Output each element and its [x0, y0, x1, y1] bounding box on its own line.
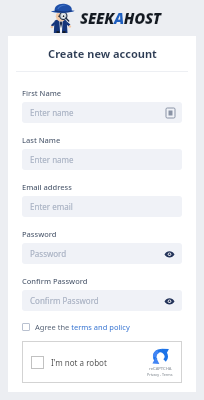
- staticText: Create new account: [48, 46, 157, 61]
- staticText: Enter name: [30, 154, 74, 165]
- button[interactable]: Enter name: [22, 149, 182, 170]
- button[interactable]: Agree the terms and policy: [22, 322, 182, 332]
- staticText: Password: [30, 248, 67, 259]
- button[interactable]: I'm not a robot checkbox: [31, 356, 44, 369]
- staticText: Email address: [22, 182, 72, 192]
- button[interactable]: I'm not a robot checkbox: [22, 341, 182, 383]
- staticText: reCAPTCHA: [149, 366, 172, 372]
- staticText: First Name: [22, 88, 62, 98]
- button[interactable]: Autofill: [164, 107, 176, 119]
- button[interactable]: Confirm Password: [22, 290, 182, 311]
- button[interactable]: Enter email: [22, 196, 182, 217]
- staticText: Enter name: [30, 107, 74, 118]
- staticText: Password: [22, 229, 57, 239]
- staticText: I'm not a robot: [51, 357, 107, 368]
- button[interactable]: Show password: [162, 247, 176, 261]
- button[interactable]: Enter name: [22, 102, 182, 123]
- staticText: Confirm Password: [22, 276, 88, 286]
- button[interactable]: Password: [22, 243, 182, 264]
- staticText: Confirm Password: [30, 295, 99, 306]
- staticText: Agree the terms and policy: [35, 322, 130, 332]
- button[interactable]: Show password: [162, 294, 176, 308]
- other: SeekaHost logo: [43, 3, 79, 33]
- staticText: SEEKAHOST: [80, 8, 161, 28]
- staticText: Privacy - Terms: [147, 372, 173, 377]
- staticText: Last Name: [22, 135, 61, 145]
- staticText: Enter email: [30, 201, 73, 212]
